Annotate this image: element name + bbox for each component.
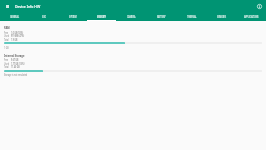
staticText: SOC	[42, 15, 46, 18]
staticText: RAM	[4, 25, 10, 29]
staticText: Used	[4, 62, 9, 65]
staticText: SENSORS	[217, 15, 226, 18]
staticText: 919 MB (47%)	[11, 34, 24, 37]
staticText: APPLICATIONS	[244, 15, 258, 18]
staticText: BATTERY	[157, 15, 166, 18]
staticText: Total	[4, 65, 9, 68]
button[interactable]: APPLICATIONS	[236, 13, 266, 21]
staticText: Internal Storage	[4, 53, 24, 57]
staticText: SYSTEM	[69, 15, 77, 18]
staticText: 9.67 GB	[11, 58, 18, 61]
staticText: 11.43 GB	[11, 65, 20, 68]
staticText: 1.9 GB	[11, 38, 17, 41]
staticText: GENERAL	[10, 15, 19, 18]
staticText: THERMAL	[187, 15, 196, 18]
button[interactable]: THERMAL	[176, 13, 206, 21]
button[interactable]: About this app	[253, 0, 266, 13]
button[interactable]: CAMERA	[116, 13, 146, 21]
staticText: 1.77 GB (13%)	[11, 62, 24, 65]
staticText: Free	[4, 31, 8, 34]
button[interactable]: GENERAL	[0, 13, 29, 21]
button[interactable]: SYSTEM	[58, 13, 87, 21]
button[interactable]: BATTERY	[146, 13, 176, 21]
staticText: CAMERA	[127, 15, 135, 18]
staticText: Device Info HW	[15, 3, 40, 9]
button[interactable]: SENSORS	[206, 13, 236, 21]
button[interactable]: Open navigation drawer	[0, 0, 15, 13]
staticText: Free	[4, 58, 8, 61]
staticText: 1 GB	[4, 46, 9, 49]
button[interactable]: SOC	[29, 13, 58, 21]
staticText: 1.0 GB (53%)	[11, 31, 23, 34]
staticText: MEMORY	[97, 15, 106, 18]
staticText: Used	[4, 34, 9, 37]
button[interactable]: MEMORY	[87, 13, 116, 21]
staticText: Total	[4, 38, 9, 41]
staticText: Storage is not emulated	[4, 73, 27, 76]
